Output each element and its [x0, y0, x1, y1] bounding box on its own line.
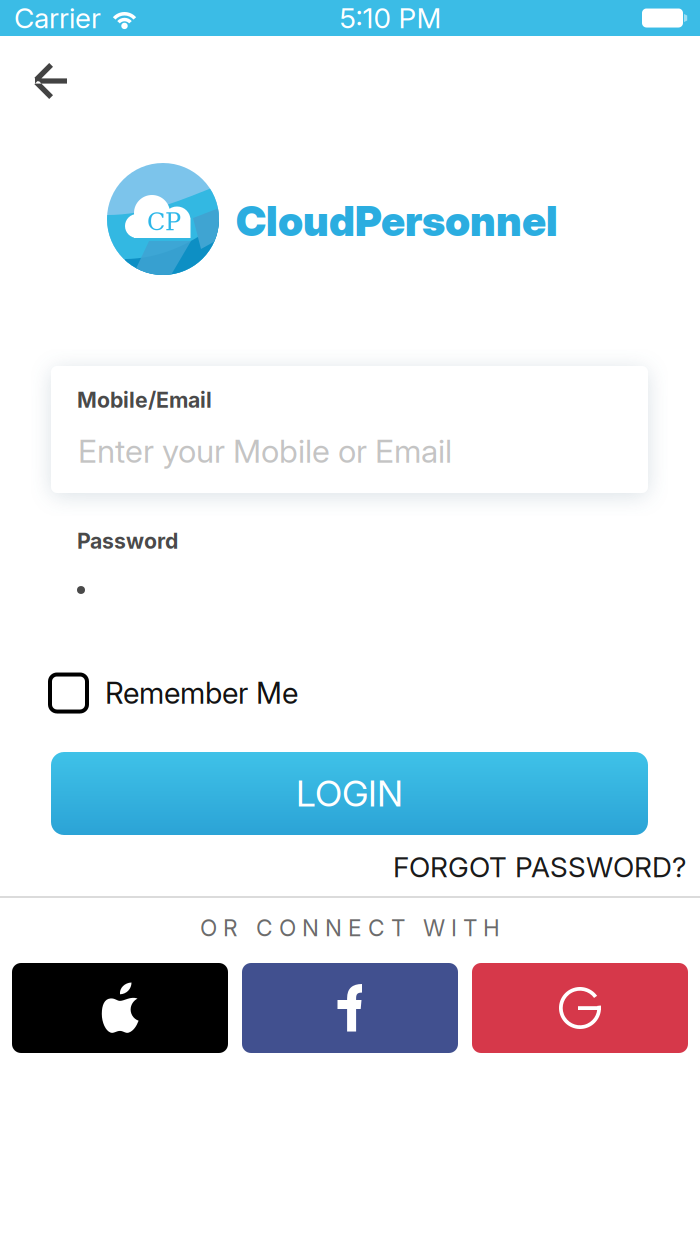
staticText: Mobile/Email: [77, 387, 212, 413]
staticText: Carrier: [14, 1, 101, 35]
staticText: CloudPersonnel: [236, 196, 558, 246]
staticText: Remember Me: [105, 675, 298, 711]
button[interactable]: Remember Me: [50, 667, 350, 719]
button[interactable]: Back: [18, 49, 82, 113]
button[interactable]: LOGIN: [51, 752, 648, 835]
staticText: O R C O N N E C T W I T H: [200, 914, 500, 942]
staticText: Password: [77, 528, 178, 554]
staticText: FORGOT PASSWORD?: [393, 850, 686, 884]
button[interactable]: FORGOT PASSWORD?: [266, 844, 686, 890]
button[interactable]: Sign in with Apple: [12, 963, 228, 1053]
staticText: CP: [147, 208, 181, 236]
button[interactable]: Sign in with Facebook: [242, 963, 458, 1053]
staticText: LOGIN: [296, 772, 403, 815]
button[interactable]: Sign in with Google: [472, 963, 688, 1053]
staticText: 5:10 PM: [339, 1, 441, 35]
staticText: Enter your Mobile or Email: [78, 432, 452, 470]
